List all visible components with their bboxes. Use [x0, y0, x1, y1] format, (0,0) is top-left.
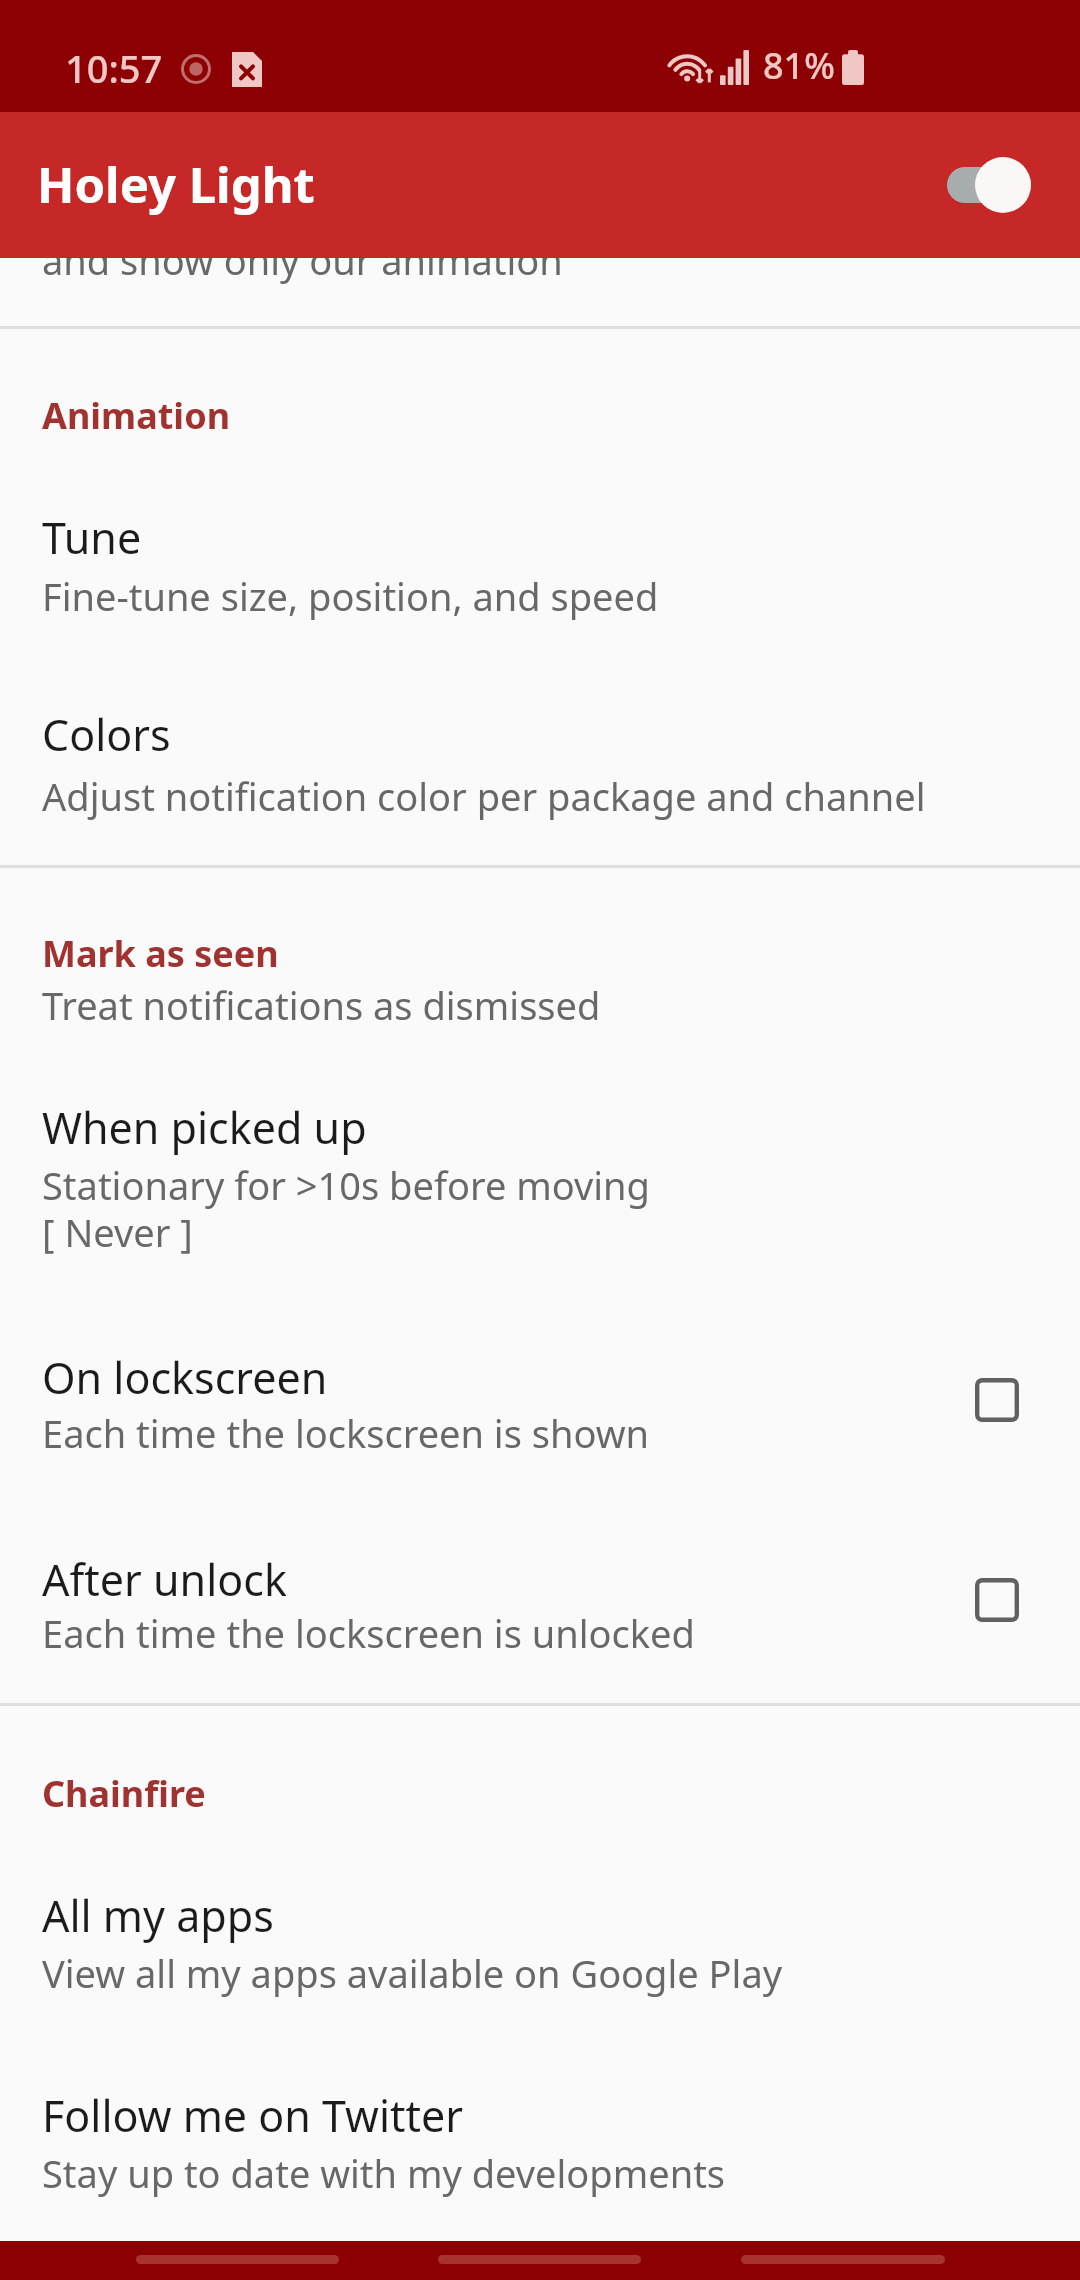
staticText: [ Never ] [42, 1206, 193, 1258]
staticText: Chainfire [42, 1769, 206, 1818]
button[interactable]: Enable Holey Light [927, 125, 1053, 245]
button[interactable]: After unlock [0, 1500, 1080, 1690]
staticText: On lockscreen [42, 1348, 328, 1407]
staticText: Each time the lockscreen is shown [42, 1407, 650, 1459]
staticText: Holey Light [37, 151, 315, 218]
staticText: Mark as seen [42, 929, 279, 978]
button[interactable]: Toggle [962, 1565, 1032, 1635]
staticText: and show only our animation [42, 234, 563, 286]
staticText: When picked up [42, 1098, 367, 1157]
staticText: 10:57 [65, 42, 163, 94]
staticText: All my apps [42, 1886, 274, 1945]
button[interactable]: Colors [0, 655, 1080, 860]
staticText: View all my apps available on Google Pla… [42, 1947, 783, 1999]
staticText: 81% [763, 41, 835, 90]
button[interactable]: On lockscreen [0, 1300, 1080, 1490]
button[interactable]: Tune [0, 466, 1080, 645]
staticText: Tune [42, 508, 142, 567]
staticText: Treat notifications as dismissed [42, 979, 601, 1031]
button[interactable]: Home [438, 2255, 641, 2264]
button[interactable]: Back [741, 2255, 945, 2264]
staticText: After unlock [42, 1550, 287, 1609]
button[interactable]: and show only our animation [0, 200, 1080, 323]
staticText: Stationary for >10s before moving [42, 1159, 650, 1211]
staticText: Adjust notification color per package an… [42, 770, 926, 822]
button[interactable]: Toggle [962, 1365, 1032, 1435]
button[interactable]: Recents [136, 2255, 339, 2264]
staticText: Fine-tune size, position, and speed [42, 570, 659, 622]
button[interactable]: Follow me on Twitter [0, 2045, 1080, 2230]
staticText: Stay up to date with my developments [42, 2147, 726, 2199]
button[interactable]: All my apps [0, 1845, 1080, 2030]
staticText: Colors [42, 705, 171, 764]
staticText: Follow me on Twitter [42, 2086, 464, 2145]
staticText: Each time the lockscreen is unlocked [42, 1607, 695, 1659]
staticText: Animation [42, 391, 231, 440]
button[interactable]: When picked up [0, 1055, 1080, 1285]
